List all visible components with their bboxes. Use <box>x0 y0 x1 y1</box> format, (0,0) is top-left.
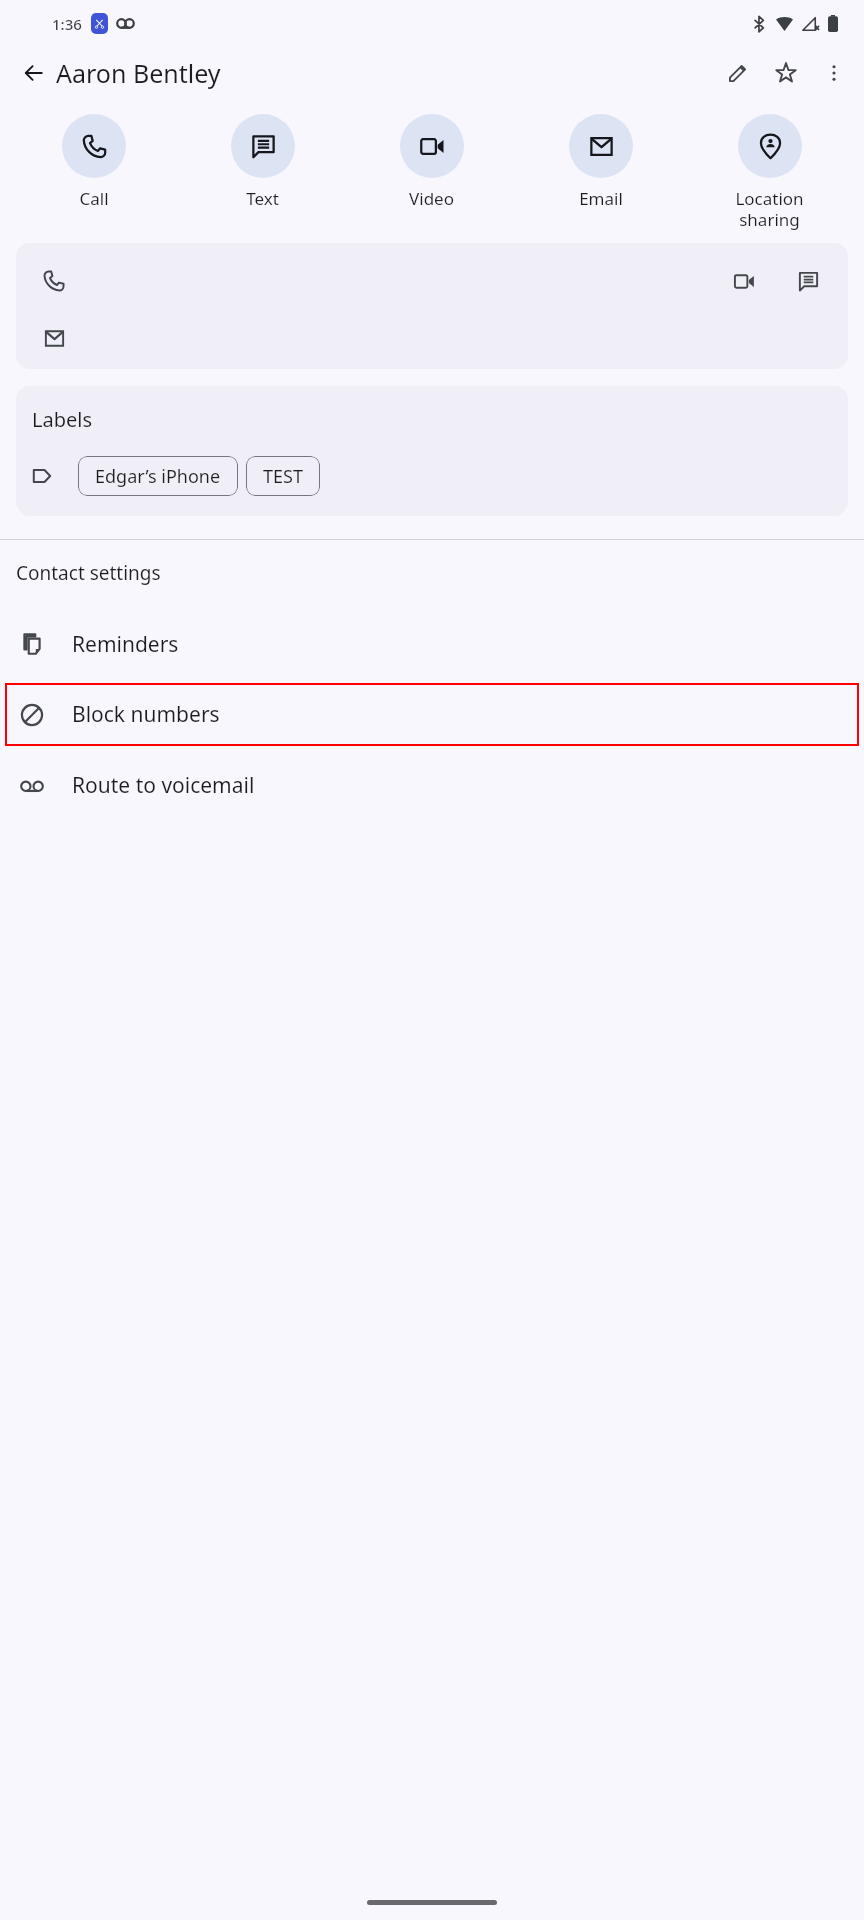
button[interactable]: Call <box>34 261 74 301</box>
button[interactable]: Reminders <box>0 608 864 680</box>
staticText: Contact settings <box>16 560 161 586</box>
staticText: Aaron Bentley <box>56 56 221 90</box>
button[interactable]: Edit <box>714 49 762 97</box>
button[interactable]: More options <box>810 49 858 97</box>
button[interactable]: Video <box>347 114 516 210</box>
button[interactable]: Email <box>516 114 685 210</box>
staticText: Call <box>79 187 109 210</box>
button[interactable]: Send message <box>788 261 828 301</box>
button[interactable]: Video call <box>724 261 764 301</box>
staticText: 1:36 <box>52 14 82 34</box>
staticText: Labels <box>32 406 93 433</box>
staticText: Video <box>409 187 454 210</box>
staticText: TEST <box>263 464 303 489</box>
button[interactable]: Back <box>10 49 58 97</box>
button[interactable]: Location sharing <box>685 114 854 231</box>
staticText: Location sharing <box>735 187 804 231</box>
staticText: Text <box>246 187 279 210</box>
staticText: Route to voicemail <box>72 771 255 800</box>
button[interactable]: Call <box>10 114 178 210</box>
staticText: Email <box>579 187 623 210</box>
staticText: Edgar’s iPhone <box>95 464 221 489</box>
button[interactable]: Route to voicemail <box>0 749 864 821</box>
button[interactable]: Send email <box>34 318 74 358</box>
staticText: Block numbers <box>72 700 220 729</box>
button[interactable]: Text <box>178 114 347 210</box>
button[interactable]: Favorite <box>762 49 810 97</box>
button[interactable]: Edgar’s iPhone <box>78 456 238 496</box>
button[interactable]: TEST <box>246 456 320 496</box>
staticText: Reminders <box>72 630 179 659</box>
button[interactable]: Block numbers <box>5 683 859 746</box>
